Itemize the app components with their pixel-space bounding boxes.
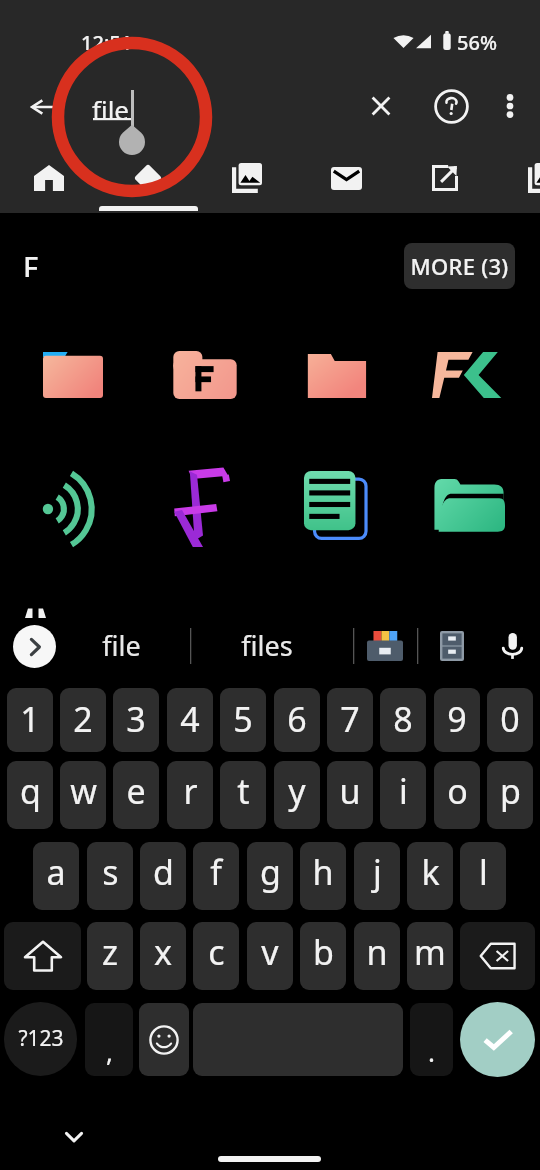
staticText: w <box>70 768 97 814</box>
staticText: p <box>500 768 521 814</box>
button[interactable]: q <box>7 761 53 829</box>
button[interactable]: Folder F icon <box>171 348 239 402</box>
button[interactable]: 0 <box>487 688 533 752</box>
button[interactable]: t <box>220 761 266 829</box>
staticText: h <box>312 849 334 895</box>
staticText: t <box>237 768 250 814</box>
staticText: file <box>102 627 141 664</box>
button[interactable]: Open folder icon <box>432 472 506 538</box>
staticText: 3 <box>126 696 146 742</box>
button[interactable]: a <box>33 842 79 910</box>
staticText: c <box>208 929 225 975</box>
button[interactable]: h <box>300 842 346 910</box>
button[interactable]: p <box>487 761 533 829</box>
button[interactable]: 4 <box>167 688 213 752</box>
button[interactable]: Folder icon 2 <box>303 348 369 402</box>
button[interactable]: 7 <box>327 688 373 752</box>
button[interactable]: 9 <box>434 688 480 752</box>
button[interactable]: Clear query <box>357 82 405 130</box>
staticText: z <box>102 929 118 975</box>
button[interactable]: File cabinet <box>439 629 465 663</box>
button[interactable]: i <box>380 761 426 829</box>
button[interactable]: k <box>407 842 453 910</box>
staticText: 8 <box>393 696 413 742</box>
button[interactable]: MORE (3) <box>404 243 515 289</box>
button[interactable]: n <box>354 922 400 990</box>
button[interactable]: y <box>274 761 320 829</box>
button[interactable]: Images tab <box>212 153 282 203</box>
button[interactable]: x <box>140 922 186 990</box>
button[interactable]: Purple f icon <box>172 464 234 548</box>
staticText: u <box>339 768 361 814</box>
button[interactable]: Clipboard <box>366 629 404 663</box>
button[interactable]: Folder icon <box>42 350 104 400</box>
staticText: , <box>106 1034 113 1069</box>
button[interactable]: o <box>434 761 480 829</box>
staticText: n <box>366 929 388 975</box>
button[interactable]: v <box>247 922 293 990</box>
staticText: 9 <box>447 696 467 742</box>
button[interactable]: Backspace <box>460 922 535 990</box>
button[interactable]: Hide keyboard <box>58 1122 90 1152</box>
button[interactable]: More options <box>489 82 531 130</box>
button[interactable]: Emoji <box>139 1003 189 1076</box>
button[interactable]: Document icon <box>300 470 370 540</box>
button[interactable]: j <box>354 842 400 910</box>
button[interactable] <box>193 1003 403 1076</box>
staticText: f <box>210 849 222 895</box>
staticText: q <box>20 768 41 814</box>
button[interactable]: e <box>113 761 159 829</box>
staticText: m <box>414 929 446 975</box>
staticText: 5 <box>233 696 253 742</box>
button[interactable]: Discover tab <box>113 153 183 203</box>
staticText: d <box>153 849 174 895</box>
button[interactable]: Help <box>427 82 475 130</box>
button[interactable]: files <box>221 625 313 665</box>
staticText: a <box>46 849 66 895</box>
button[interactable]: Shift <box>4 922 81 990</box>
button[interactable]: 5 <box>220 688 266 752</box>
button[interactable]: g <box>247 842 293 910</box>
button[interactable]: l <box>460 842 506 910</box>
button[interactable]: z <box>87 922 133 990</box>
button[interactable]: 1 <box>7 688 53 752</box>
staticText: file <box>92 92 130 122</box>
button[interactable]: f <box>193 842 239 910</box>
button[interactable]: Signal icon <box>43 477 95 541</box>
button[interactable]: 6 <box>274 688 320 752</box>
button[interactable]: Mail tab <box>311 153 381 203</box>
button[interactable]: 8 <box>380 688 426 752</box>
staticText: l <box>479 849 488 895</box>
button[interactable]: m <box>407 922 453 990</box>
staticText: 7 <box>340 696 360 742</box>
button[interactable]: , <box>85 1003 133 1076</box>
button[interactable]: Expand suggestions <box>13 625 56 668</box>
button[interactable]: Search <box>460 1002 535 1077</box>
button[interactable]: s <box>87 842 133 910</box>
staticText: ?123 <box>18 1024 64 1053</box>
staticText: k <box>421 849 440 895</box>
button[interactable]: b <box>300 922 346 990</box>
staticText: 2 <box>73 696 93 742</box>
button[interactable]: . <box>410 1003 453 1076</box>
button[interactable]: FK logo <box>432 350 502 400</box>
button[interactable]: Home tab <box>14 153 84 203</box>
button[interactable]: 3 <box>113 688 159 752</box>
button[interactable]: r <box>167 761 213 829</box>
staticText: j <box>373 849 382 895</box>
staticText: s <box>102 849 119 895</box>
button[interactable]: u <box>327 761 373 829</box>
button[interactable]: file <box>76 625 166 665</box>
button[interactable]: Open in new tab <box>410 153 480 203</box>
button[interactable]: Voice input <box>501 631 523 661</box>
button[interactable]: c <box>193 922 239 990</box>
button[interactable]: d <box>140 842 186 910</box>
button[interactable]: Videos tab <box>520 153 540 203</box>
staticText: y <box>288 768 306 814</box>
button[interactable]: w <box>60 761 106 829</box>
staticText: 56% <box>457 29 497 53</box>
staticText: MORE (3) <box>410 251 509 281</box>
button[interactable]: Back <box>20 83 68 131</box>
button[interactable]: 2 <box>60 688 106 752</box>
button[interactable]: ?123 <box>4 1002 77 1076</box>
